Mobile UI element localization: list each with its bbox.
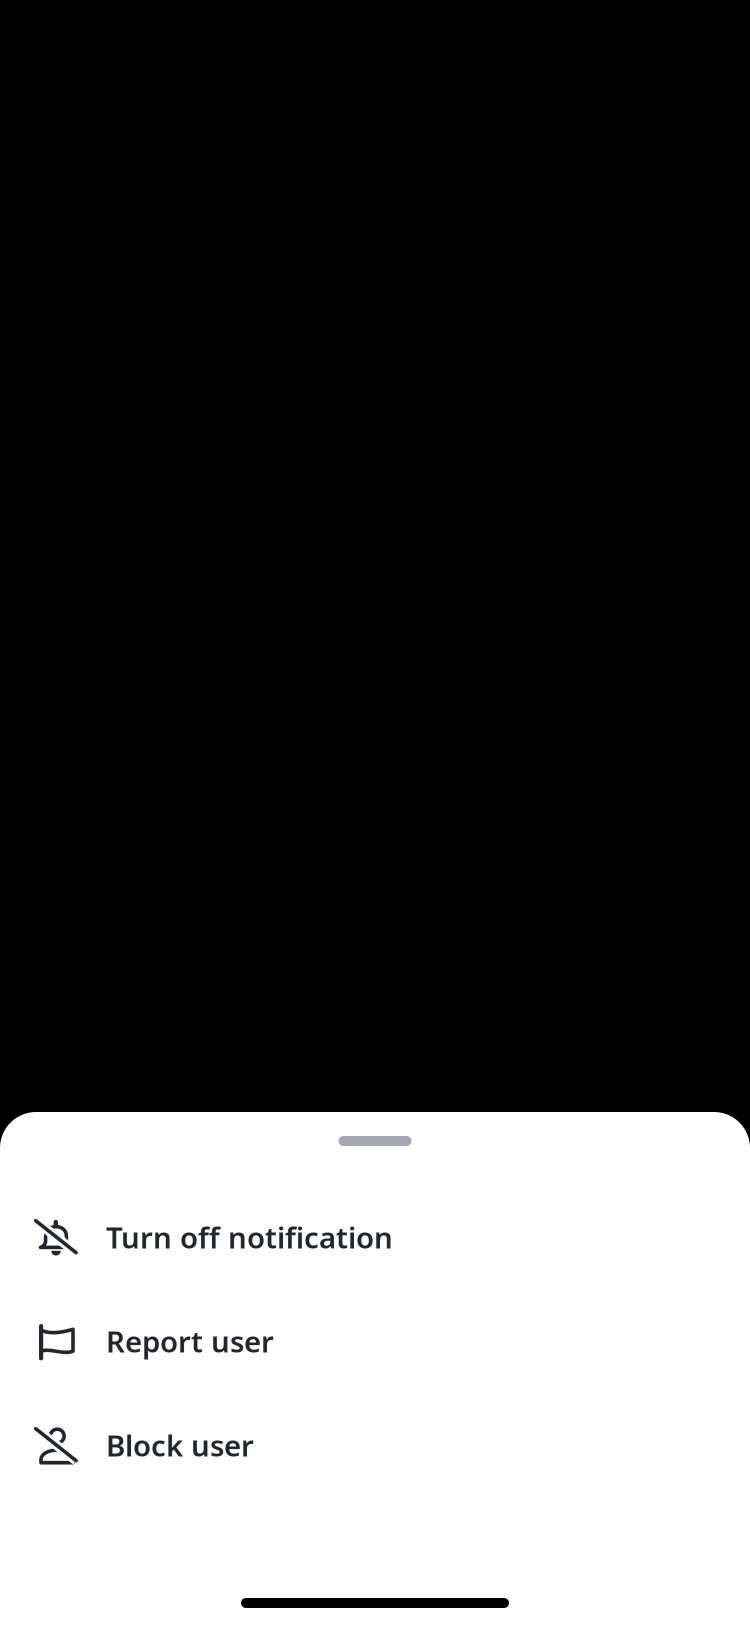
staticText: Turn off notification — [106, 1217, 393, 1256]
staticText: Report user — [106, 1321, 274, 1360]
button[interactable]: Report user — [0, 1289, 750, 1393]
button[interactable]: Block user — [0, 1393, 750, 1497]
button[interactable]: Turn off notification — [0, 1185, 750, 1289]
staticText: Block user — [106, 1425, 254, 1464]
